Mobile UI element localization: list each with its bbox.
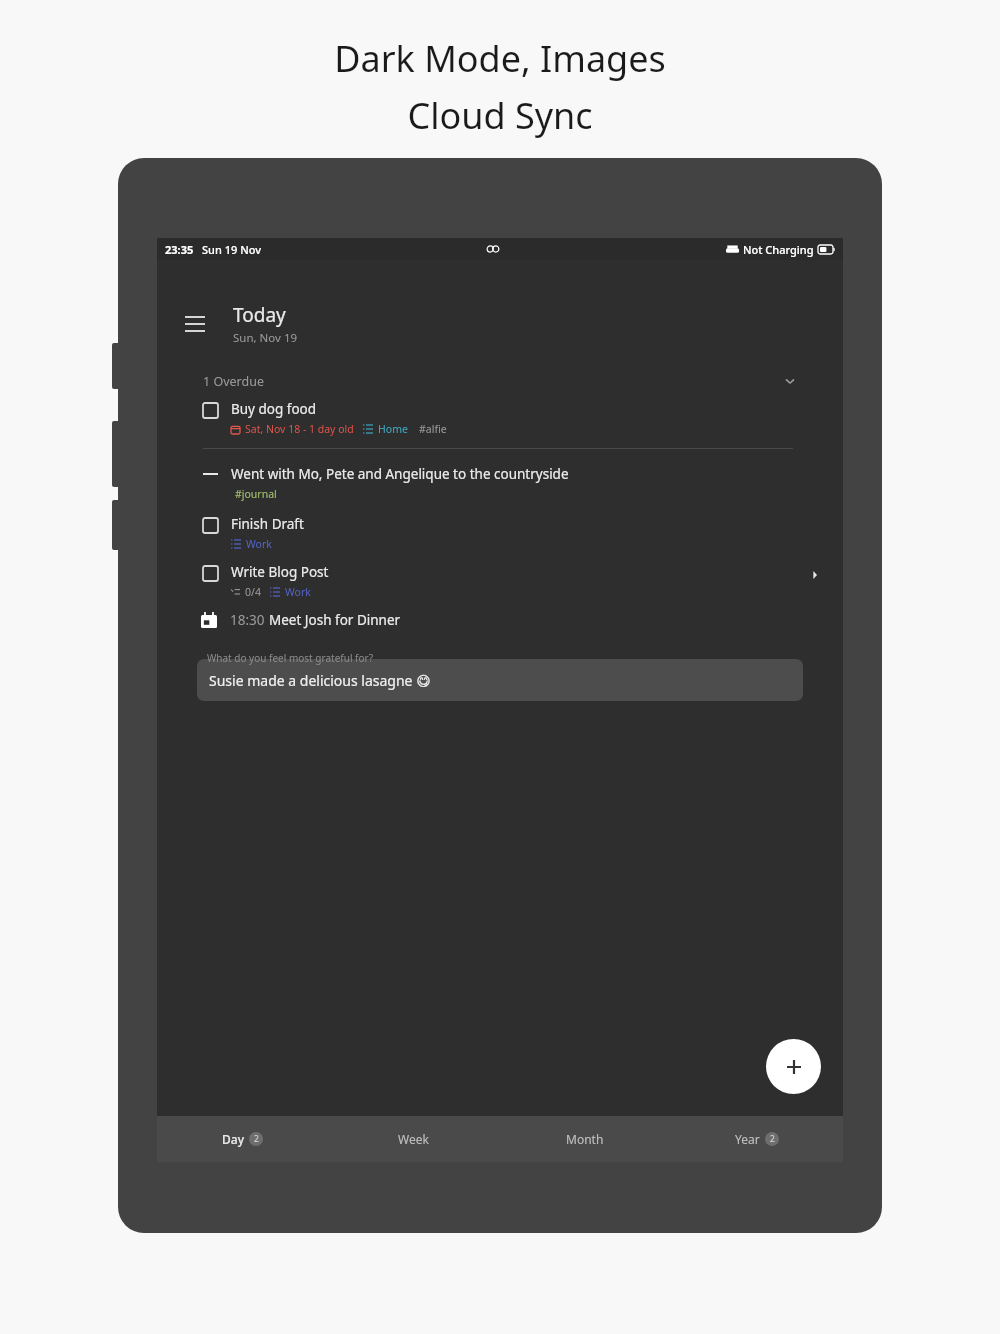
staticText: Not Charging <box>743 242 814 257</box>
button[interactable]: Buy dog food <box>203 400 823 436</box>
staticText: 23:35 <box>165 242 194 257</box>
staticText: Finish Draft <box>231 515 304 533</box>
button[interactable]: Write Blog Post <box>203 563 823 599</box>
button[interactable]: Went with Mo, Pete and Angelique to the … <box>203 465 823 501</box>
staticText: Buy dog food <box>231 400 317 418</box>
staticText: #journal <box>235 487 277 501</box>
staticText: 0/4 <box>245 585 261 599</box>
staticText: #alfie <box>419 422 447 436</box>
staticText: Sat, Nov 18 - 1 day old <box>245 422 354 436</box>
staticText: Month <box>566 1131 604 1147</box>
button[interactable]: Finish Draft <box>203 515 823 551</box>
button[interactable]: Susie made a delicious lasagne 😋 <box>197 659 803 701</box>
button[interactable]: 18:30 <box>201 611 823 629</box>
staticText: Dark Mode, Images <box>334 34 666 83</box>
staticText: Year <box>735 1131 760 1147</box>
staticText: Work <box>285 585 311 599</box>
button[interactable]: Month <box>499 1116 671 1162</box>
staticText: 2 <box>770 1133 775 1145</box>
staticText: Write Blog Post <box>231 563 329 581</box>
button[interactable]: Add task <box>766 1039 821 1094</box>
staticText: 18:30 <box>230 611 269 629</box>
button[interactable]: Expand <box>807 567 823 583</box>
staticText: Meet Josh for Dinner <box>269 611 401 629</box>
staticText: Went with Mo, Pete and Angelique to the … <box>231 465 569 483</box>
staticText: Work <box>246 537 272 551</box>
button[interactable]: 1 Overdue <box>203 368 797 394</box>
staticText: What do you feel most grateful for? <box>207 651 374 665</box>
staticText: Cloud Sync <box>407 91 593 140</box>
staticText: Home <box>378 422 408 436</box>
staticText: Today <box>233 302 286 328</box>
button[interactable]: Day <box>157 1116 328 1162</box>
staticText: Sun, Nov 19 <box>233 330 298 346</box>
staticText: 1 Overdue <box>203 373 264 390</box>
staticText: Week <box>398 1131 429 1147</box>
button[interactable]: Week <box>328 1116 499 1162</box>
button[interactable]: Menu <box>175 304 215 344</box>
button[interactable]: Year <box>671 1116 843 1162</box>
staticText: 2 <box>254 1133 259 1145</box>
staticText: Sun 19 Nov <box>202 242 261 257</box>
staticText: Day <box>222 1131 244 1147</box>
staticText: Susie made a delicious lasagne 😋 <box>209 671 431 690</box>
